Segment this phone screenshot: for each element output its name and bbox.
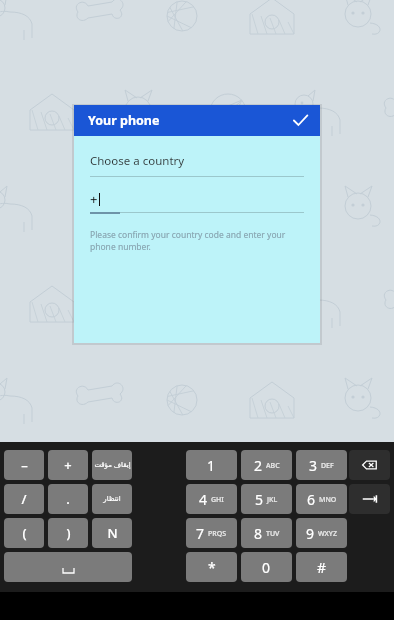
button[interactable]: N [92,518,132,548]
staticText: – [21,456,28,474]
staticText: * [208,558,216,577]
staticText: Your phone [88,112,160,129]
button[interactable]: Your phone [74,105,320,136]
button[interactable]: ) [48,518,88,548]
staticText: + [90,190,98,208]
button[interactable]: – [4,450,44,480]
button[interactable]: Choose a country [74,153,320,169]
staticText: 7 [196,524,205,543]
button[interactable]: / [4,484,44,514]
staticText: انتظار [103,495,121,503]
staticText: إيقاف مؤقت [94,460,131,470]
staticText: GHI [211,495,224,505]
button[interactable]: 5 [241,484,292,514]
staticText: 8 [254,524,263,543]
staticText: 1 [207,456,216,475]
button[interactable]: ( [4,518,44,548]
button[interactable]: 2 [241,450,292,480]
button[interactable]: انتظار [92,484,132,514]
button[interactable]: # [296,552,347,582]
staticText: MNO [319,495,337,505]
staticText: + [64,456,72,474]
button[interactable]: Space [4,552,132,582]
button[interactable]: إيقاف مؤقت [92,450,132,480]
button[interactable]: . [48,484,88,514]
button[interactable]: Next field [349,484,390,514]
staticText: 5 [255,490,264,509]
staticText: TUV [266,529,280,539]
staticText: 6 [307,490,316,509]
button[interactable]: 7 [186,518,237,548]
staticText: DEF [321,461,334,471]
staticText: Choose a country [90,153,185,169]
staticText: JKL [267,495,278,505]
button[interactable]: + [74,190,320,208]
button[interactable]: + [48,450,88,480]
button[interactable]: 0 [241,552,292,582]
button[interactable]: 6 [296,484,347,514]
button[interactable]: 3 [296,450,347,480]
staticText: ) [66,524,71,542]
staticText: PRQS [208,529,227,539]
button[interactable]: * [186,552,237,582]
staticText: Please confirm your country code and ent… [90,229,304,253]
staticText: 9 [306,524,315,543]
button[interactable]: 4 [186,484,237,514]
staticText: ( [22,524,27,542]
staticText: 4 [199,490,208,509]
button[interactable]: Backspace [349,450,390,480]
staticText: . [66,490,70,508]
staticText: 0 [262,558,271,577]
staticText: / [21,490,27,508]
staticText: ABC [266,461,280,471]
staticText: N [107,524,118,542]
button[interactable]: 1 [186,450,237,480]
staticText: 3 [309,456,318,475]
staticText: 2 [254,456,263,475]
staticText: WXYZ [318,529,337,539]
button[interactable]: 9 [296,518,347,548]
staticText: # [317,558,327,577]
button[interactable]: Confirm phone number [287,107,314,134]
button[interactable]: 8 [241,518,292,548]
